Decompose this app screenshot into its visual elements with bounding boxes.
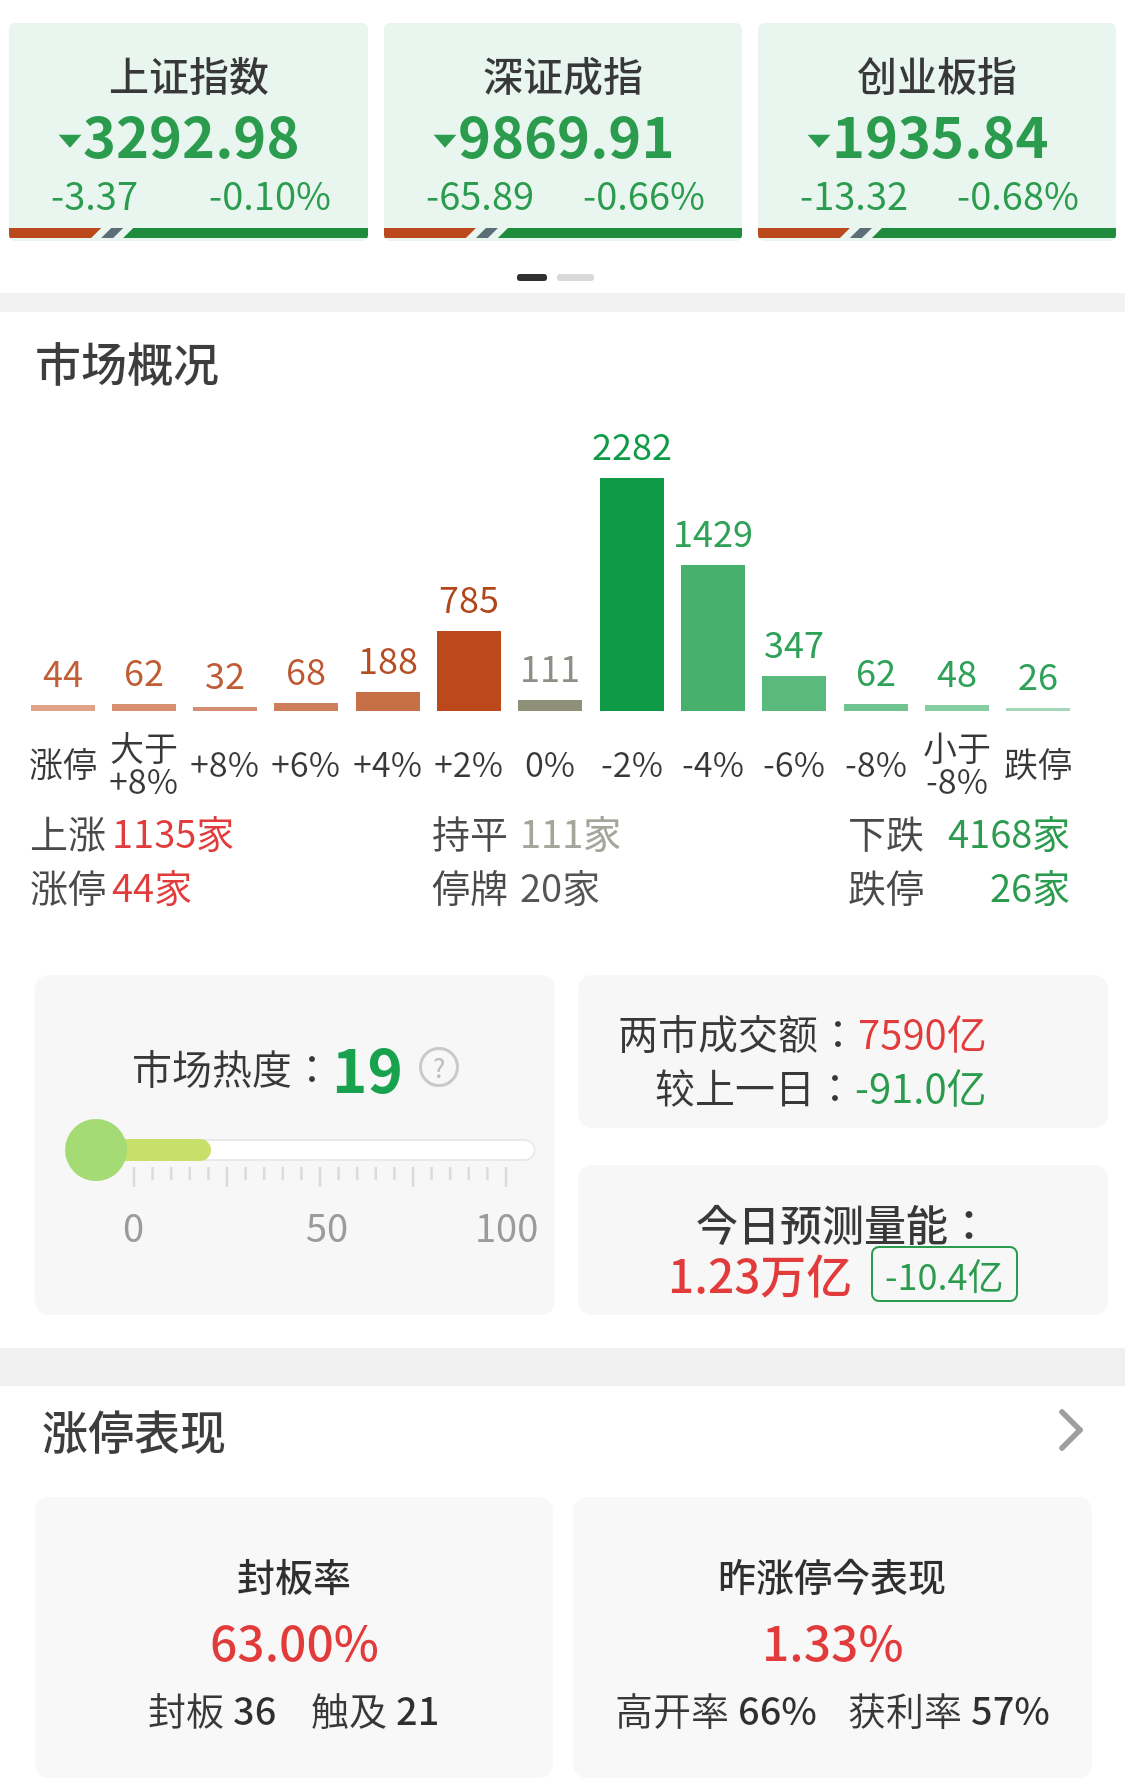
staticText: 32 (205, 647, 245, 699)
staticText: 62 (124, 644, 164, 696)
staticText: 获利率 (848, 1681, 971, 1736)
staticText: 涨停 (30, 858, 107, 913)
staticText: 涨停表现 (42, 1396, 226, 1463)
staticText: 上证指数 (109, 45, 269, 103)
staticText: 785 (439, 571, 499, 623)
staticText: 两市成交额： (618, 1003, 858, 1061)
staticText: 26家 (990, 858, 1071, 913)
button[interactable]: 今日预测量能： (578, 1165, 1108, 1315)
staticText: 0% (525, 738, 576, 787)
staticText: 21 (396, 1681, 440, 1736)
staticText: -65.89 (426, 166, 535, 221)
staticText: 1429 (673, 505, 753, 557)
staticText: -0.66% (583, 166, 706, 221)
staticText: 2282 (592, 418, 672, 470)
staticText: 深证成指 (483, 45, 643, 103)
staticText: 小于 (923, 722, 991, 771)
button[interactable]: 涨停表现 (0, 1396, 1125, 1463)
staticText: 19 (332, 1023, 403, 1110)
staticText: -0.10% (209, 166, 332, 221)
staticText: 68 (286, 643, 326, 695)
staticText: 封板率 (237, 1547, 352, 1602)
staticText: +6% (271, 738, 341, 787)
staticText: +2% (434, 738, 504, 787)
staticText: 1135家 (112, 804, 235, 859)
staticText: -10.4亿 (885, 1248, 1004, 1300)
staticText: 26 (1018, 648, 1058, 700)
staticText: 封板 (148, 1681, 233, 1736)
staticText: +4% (353, 738, 423, 787)
staticText: 上涨 (30, 804, 107, 859)
staticText: 347 (764, 616, 824, 668)
staticText: +8% (109, 755, 179, 804)
button[interactable]: 两市成交额： (578, 975, 1108, 1128)
staticText: 44 (43, 645, 83, 697)
staticText: 50 (306, 1198, 349, 1253)
staticText: 66% (738, 1681, 818, 1736)
staticText: 3292.98 (83, 93, 300, 174)
staticText: -3.37 (51, 166, 139, 221)
button[interactable]: 昨涨停今表现 (573, 1497, 1092, 1778)
button[interactable]: 上证指数 (9, 23, 368, 241)
staticText: 0 (123, 1198, 145, 1253)
staticText: 高开率 (615, 1681, 738, 1736)
staticText: 1935.84 (832, 93, 1049, 174)
staticText: 停牌 (432, 858, 509, 913)
staticText: -6% (763, 738, 825, 787)
button[interactable]: 创业板指 (758, 23, 1116, 241)
staticText: 市场热度： (132, 1038, 332, 1096)
staticText: 20家 (520, 858, 601, 913)
staticText: 7590亿 (858, 1003, 987, 1061)
staticText: -8% (926, 755, 988, 804)
staticText: 63.00% (210, 1605, 379, 1675)
staticText: 较上一日： (655, 1057, 855, 1115)
staticText: 188 (358, 632, 418, 684)
staticText: 1.33% (762, 1605, 904, 1675)
staticText: 9869.91 (458, 93, 675, 174)
staticText: -91.0亿 (855, 1057, 987, 1115)
staticText: 111家 (520, 804, 622, 859)
staticText: 昨涨停今表现 (718, 1547, 947, 1602)
staticText: 跌停 (848, 858, 925, 913)
staticText: 100 (475, 1198, 539, 1253)
staticText: 111 (520, 640, 580, 692)
staticText: 创业板指 (857, 45, 1017, 103)
staticText: 48 (937, 645, 977, 697)
staticText: 市场概况 (35, 328, 219, 395)
staticText: 下跌 (848, 804, 925, 859)
button[interactable]: 封板率 (35, 1497, 553, 1778)
staticText: -13.32 (800, 166, 909, 221)
button[interactable]: 深证成指 (384, 23, 742, 241)
staticText: 触及 (311, 1681, 396, 1736)
staticText: +8% (190, 738, 260, 787)
staticText: -0.68% (957, 166, 1080, 221)
staticText: ? (433, 1048, 446, 1086)
staticText: -8% (845, 738, 907, 787)
button[interactable]: 市场热度： (35, 975, 555, 1315)
staticText: 跌停 (1004, 738, 1072, 787)
staticText: 4168家 (948, 804, 1071, 859)
staticText: 62 (856, 644, 896, 696)
staticText: 57% (971, 1681, 1051, 1736)
staticText: 1.23万亿 (668, 1240, 853, 1307)
staticText: 持平 (432, 804, 509, 859)
staticText: -2% (601, 738, 663, 787)
staticText: 涨停 (29, 738, 97, 787)
staticText: -4% (682, 738, 744, 787)
staticText: 大于 (110, 722, 178, 771)
staticText: 36 (233, 1681, 277, 1736)
staticText: 今日预测量能： (696, 1192, 991, 1253)
staticText: 44家 (112, 858, 193, 913)
